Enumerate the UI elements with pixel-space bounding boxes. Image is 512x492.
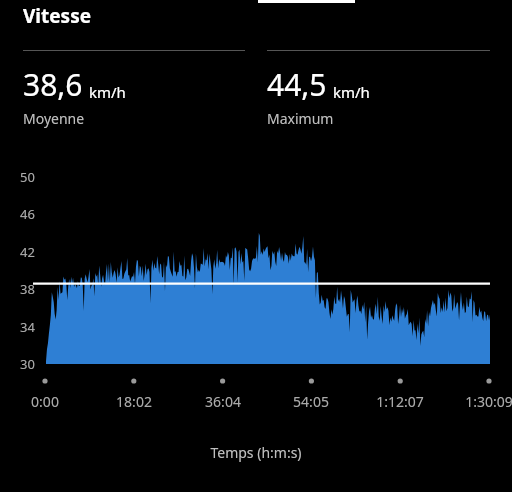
staticText: Temps (h:m:s) bbox=[210, 443, 302, 462]
staticText: 18:02 bbox=[116, 392, 152, 411]
staticText: 0:00 bbox=[31, 392, 59, 411]
staticText: 46 bbox=[20, 205, 35, 223]
staticText: 38,6 bbox=[23, 64, 83, 105]
staticText: 44,5 bbox=[267, 64, 327, 105]
staticText: Vitesse bbox=[23, 3, 92, 29]
staticText: 54:05 bbox=[293, 392, 329, 411]
button[interactable]: 38,6 bbox=[23, 50, 245, 128]
button[interactable]: 44,5 bbox=[267, 50, 490, 128]
staticText: 1:12:07 bbox=[376, 392, 424, 411]
staticText: 36:04 bbox=[205, 392, 241, 411]
staticText: 34 bbox=[20, 318, 35, 336]
staticText: 50 bbox=[20, 168, 35, 186]
staticText: 42 bbox=[20, 243, 35, 261]
staticText: km/h bbox=[333, 82, 370, 102]
staticText: Moyenne bbox=[23, 109, 85, 128]
button[interactable]: Graphique de vitesse bbox=[0, 0, 512, 492]
staticText: 38 bbox=[20, 280, 35, 298]
staticText: 30 bbox=[20, 355, 35, 373]
staticText: km/h bbox=[89, 82, 126, 102]
staticText: 1:30:09 bbox=[465, 392, 512, 411]
staticText: Maximum bbox=[267, 109, 334, 128]
